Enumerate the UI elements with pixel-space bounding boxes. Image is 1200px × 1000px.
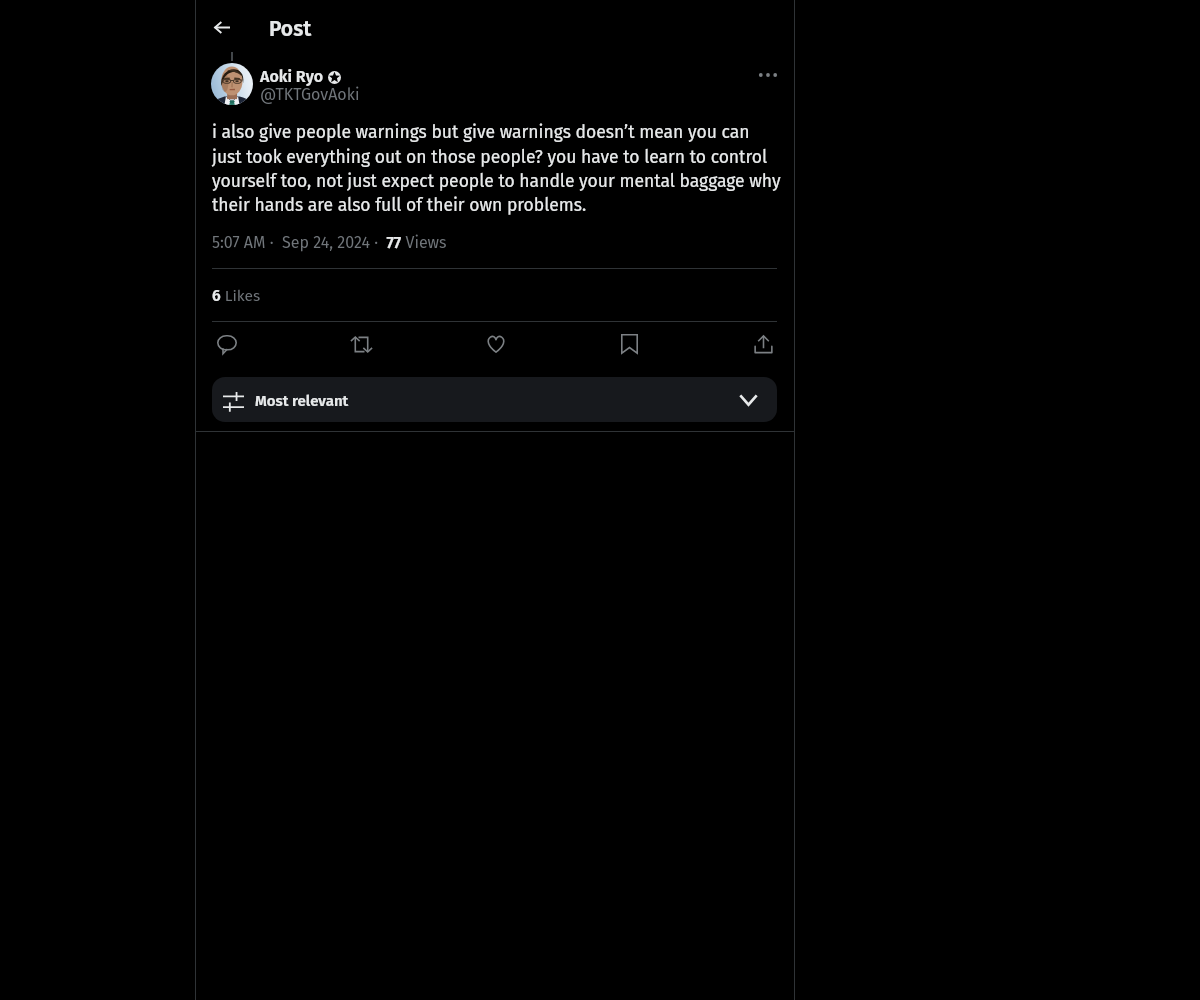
- button[interactable]: Reply: [210, 327, 244, 361]
- staticText: i also give people warnings but give war…: [212, 122, 787, 215]
- staticText: Most relevant: [255, 392, 349, 410]
- staticText: Post: [269, 16, 312, 41]
- button[interactable]: 6 Likes: [212, 269, 777, 321]
- button[interactable]: Aoki Ryo: [260, 67, 341, 86]
- button[interactable]: @TKTGovAoki: [260, 85, 360, 104]
- button[interactable]: Bookmark: [612, 327, 646, 361]
- button[interactable]: Like: [479, 327, 513, 361]
- button[interactable]: More options: [751, 58, 785, 92]
- button[interactable]: Repost: [344, 327, 378, 361]
- staticText: 6 Likes: [212, 287, 261, 306]
- button[interactable]: Profile photo: [211, 63, 253, 105]
- button[interactable]: Share: [746, 327, 780, 361]
- staticText: 5:07 AM · Sep 24, 2024 · 77 Views: [212, 233, 447, 252]
- staticText: Aoki Ryo: [260, 67, 324, 86]
- button[interactable]: Most relevant: [212, 377, 777, 422]
- button[interactable]: Back: [200, 5, 244, 49]
